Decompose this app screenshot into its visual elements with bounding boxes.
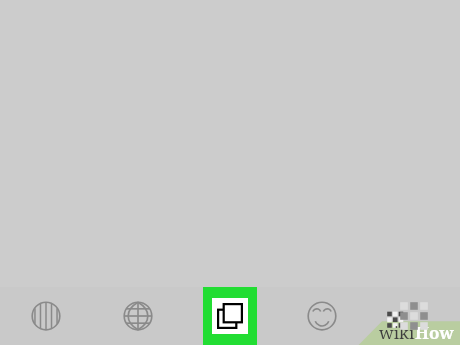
staticText: How — [415, 321, 454, 344]
button[interactable]: Web — [92, 287, 184, 345]
button[interactable]: Mosaic — [368, 287, 460, 345]
staticText: wiki — [379, 321, 415, 344]
button[interactable]: Contrast — [0, 287, 92, 345]
button[interactable]: Layers, selected — [203, 287, 257, 345]
button[interactable]: Emoji — [276, 287, 368, 345]
